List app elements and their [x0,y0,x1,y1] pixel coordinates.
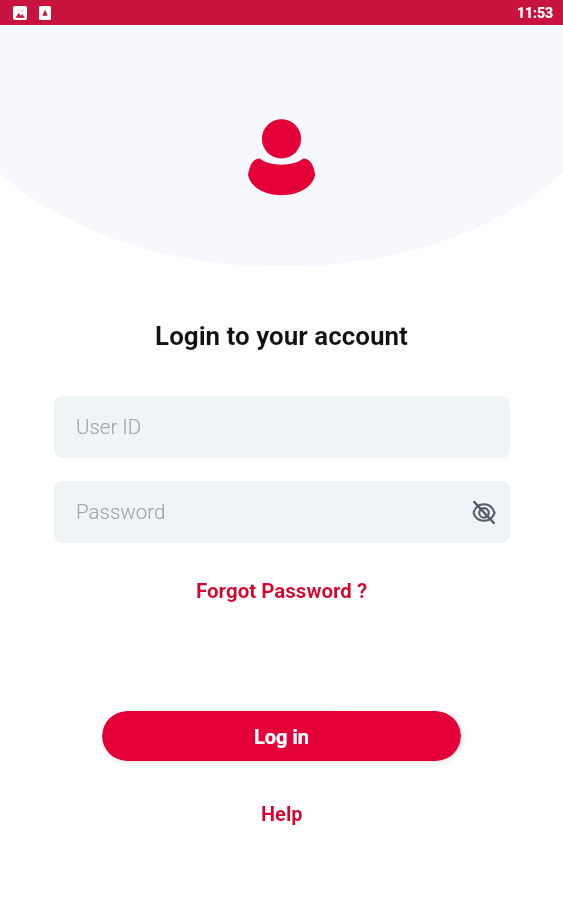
staticText: Log in [254,725,310,748]
button[interactable]: Help [251,796,313,831]
button[interactable]: Log in [102,711,461,761]
button[interactable]: Show password [463,491,505,533]
staticText: Login to your account [0,321,563,351]
button[interactable]: Forgot Password ? [186,573,378,609]
button[interactable]: User ID [54,396,510,458]
staticText: User ID [76,415,142,439]
staticText: Password [76,500,166,524]
button[interactable]: Password [54,481,510,543]
staticText: 11:53 [517,5,554,21]
